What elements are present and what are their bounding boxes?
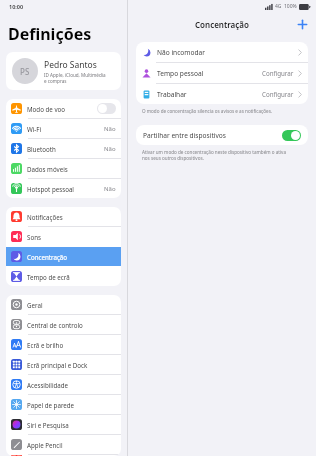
button[interactable]: Modo de voo: [97, 103, 116, 114]
staticText: Configurar: [262, 90, 294, 98]
button[interactable]: Central de controlo: [6, 315, 121, 334]
button[interactable]: Sons: [6, 227, 121, 246]
button[interactable]: Partilhar entre dispositivos: [282, 130, 301, 141]
staticText: Hotspot pessoal: [27, 185, 74, 193]
staticText: Pedro Santos: [44, 59, 97, 71]
button[interactable]: Bluetooth: [6, 139, 121, 158]
staticText: Bluetooth: [27, 145, 56, 153]
staticText: Ativar um modo de concentração neste dis…: [142, 149, 287, 161]
staticText: Notificações: [27, 213, 63, 221]
button[interactable]: Ecrã e brilho: [6, 335, 121, 354]
button[interactable]: Trabalhar: [136, 84, 308, 104]
staticText: Partilhar entre dispositivos: [143, 131, 227, 140]
staticText: Não: [104, 185, 116, 193]
staticText: Trabalhar: [157, 90, 187, 99]
staticText: Wi-Fi: [27, 125, 42, 133]
staticText: 4G: [275, 3, 282, 10]
button[interactable]: Não incomodar: [136, 42, 308, 62]
staticText: Não incomodar: [157, 48, 205, 57]
staticText: Tempo de ecrã: [27, 273, 70, 281]
button[interactable]: Apple Pencil: [6, 435, 121, 454]
staticText: Acessibilidade: [27, 381, 69, 389]
staticText: Não: [104, 145, 116, 153]
button[interactable]: Wi-Fi: [6, 119, 121, 138]
staticText: Não: [104, 125, 116, 133]
staticText: Modo de voo: [27, 105, 66, 113]
staticText: Ecrã principal e Dock: [27, 361, 88, 369]
button[interactable]: Hotspot pessoal: [6, 179, 121, 198]
button[interactable]: Geral: [6, 295, 121, 314]
button[interactable]: Modo de voo: [6, 99, 121, 118]
staticText: Concentração: [195, 19, 249, 30]
staticText: Central de controlo: [27, 321, 83, 329]
staticText: 10:00: [9, 3, 24, 10]
staticText: PS: [20, 66, 30, 77]
button[interactable]: Ecrã principal e Dock: [6, 355, 121, 374]
button[interactable]: Siri e Pesquisa: [6, 415, 121, 434]
button[interactable]: Acessibilidade: [6, 375, 121, 394]
staticText: Siri e Pesquisa: [27, 421, 69, 429]
staticText: Sons: [27, 233, 41, 241]
staticText: Papel de parede: [27, 401, 75, 409]
staticText: ID Apple, iCloud, Multimédia e compras: [44, 72, 106, 84]
button[interactable]: Adicionar concentração: [294, 16, 311, 33]
staticText: Definições: [8, 23, 92, 45]
staticText: Concentração: [27, 253, 68, 261]
staticText: Geral: [27, 301, 43, 309]
button[interactable]: Touch ID e código: [6, 455, 121, 456]
button[interactable]: PS: [6, 52, 121, 90]
button[interactable]: Partilhar entre dispositivos: [136, 125, 308, 145]
button[interactable]: Notificações: [6, 207, 121, 226]
staticText: O modo de concentração silencia os aviso…: [142, 108, 273, 114]
staticText: 100%: [284, 3, 297, 10]
staticText: Apple Pencil: [27, 441, 63, 449]
button[interactable]: Papel de parede: [6, 395, 121, 414]
button[interactable]: Tempo de ecrã: [6, 267, 121, 286]
staticText: Tempo pessoal: [157, 69, 204, 78]
staticText: Configurar: [262, 69, 294, 77]
button[interactable]: Dados móveis: [6, 159, 121, 178]
button[interactable]: Concentração: [6, 247, 121, 266]
button[interactable]: Tempo pessoal: [136, 63, 308, 83]
staticText: Ecrã e brilho: [27, 341, 64, 349]
staticText: Dados móveis: [27, 165, 68, 173]
